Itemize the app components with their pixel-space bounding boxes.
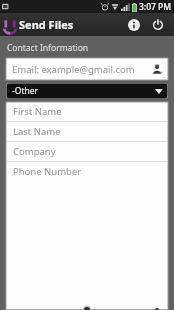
button[interactable]: Power bbox=[148, 15, 168, 35]
staticText: Email: example@gmail.com bbox=[12, 63, 135, 76]
button[interactable]: Email: example@gmail.com bbox=[6, 58, 168, 80]
staticText: First Name bbox=[13, 105, 62, 118]
staticText: Contact Information bbox=[7, 42, 89, 54]
button[interactable]: Info bbox=[124, 15, 144, 35]
button[interactable]: Company bbox=[6, 142, 168, 161]
button[interactable]: Last Name bbox=[6, 122, 168, 141]
staticText: Company bbox=[13, 145, 56, 158]
staticText: -Other bbox=[12, 85, 39, 97]
button[interactable]: -Other bbox=[6, 83, 168, 99]
button[interactable]: Pick contact bbox=[150, 62, 164, 76]
button[interactable]: First Name bbox=[6, 102, 168, 121]
button[interactable]: Phone Number bbox=[6, 162, 168, 181]
staticText: Send Files bbox=[19, 17, 74, 32]
staticText: Phone Number bbox=[13, 165, 82, 178]
staticText: 3:07 PM bbox=[139, 1, 172, 13]
staticText: Last Name bbox=[13, 125, 61, 138]
